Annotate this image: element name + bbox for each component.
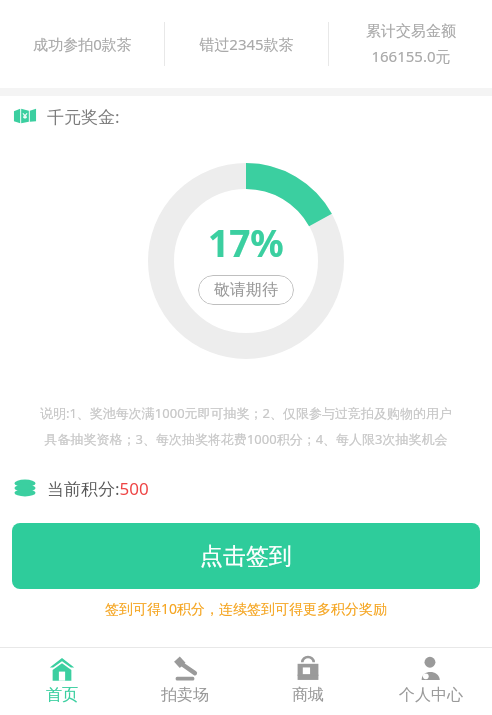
staticText: 当前积分:500 bbox=[47, 477, 149, 500]
other: 商城 bbox=[295, 656, 321, 682]
button[interactable]: 成功参拍0款茶 bbox=[0, 0, 164, 88]
button[interactable]: 首页 bbox=[0, 648, 123, 715]
button[interactable]: 错过2345款茶 bbox=[165, 0, 328, 88]
staticText: 错过2345款茶 bbox=[199, 34, 294, 54]
button[interactable]: 个人中心 bbox=[369, 648, 492, 715]
staticText: 成功参拍0款茶 bbox=[33, 34, 132, 54]
staticText: 点击签到 bbox=[200, 542, 292, 571]
staticText: 累计交易金额 166155.0元 bbox=[366, 22, 456, 66]
button[interactable]: 累计交易金额 166155.0元 bbox=[329, 0, 492, 88]
staticText: 拍卖场 bbox=[161, 685, 209, 705]
staticText: 17% bbox=[208, 217, 284, 267]
staticText: 敬请期待 bbox=[214, 280, 278, 300]
button[interactable]: 点击签到 bbox=[12, 523, 480, 589]
staticText: 说明:1、奖池每次满1000元即可抽奖；2、仅限参与过竞拍及购物的用户具备抽奖资… bbox=[34, 404, 458, 447]
other: 拍卖场 bbox=[172, 656, 198, 682]
staticText: 个人中心 bbox=[399, 685, 463, 705]
staticText: 签到可得10积分，连续签到可得更多积分奖励 bbox=[0, 599, 492, 618]
other: 个人中心 bbox=[418, 656, 444, 682]
staticText: 商城 bbox=[292, 685, 324, 705]
button[interactable]: 拍卖场 bbox=[123, 648, 246, 715]
button[interactable]: 商城 bbox=[246, 648, 369, 715]
other: 首页 bbox=[49, 656, 75, 682]
staticText: 千元奖金: bbox=[47, 105, 120, 128]
staticText: 首页 bbox=[46, 685, 78, 705]
button[interactable]: 敬请期待 bbox=[198, 275, 294, 305]
